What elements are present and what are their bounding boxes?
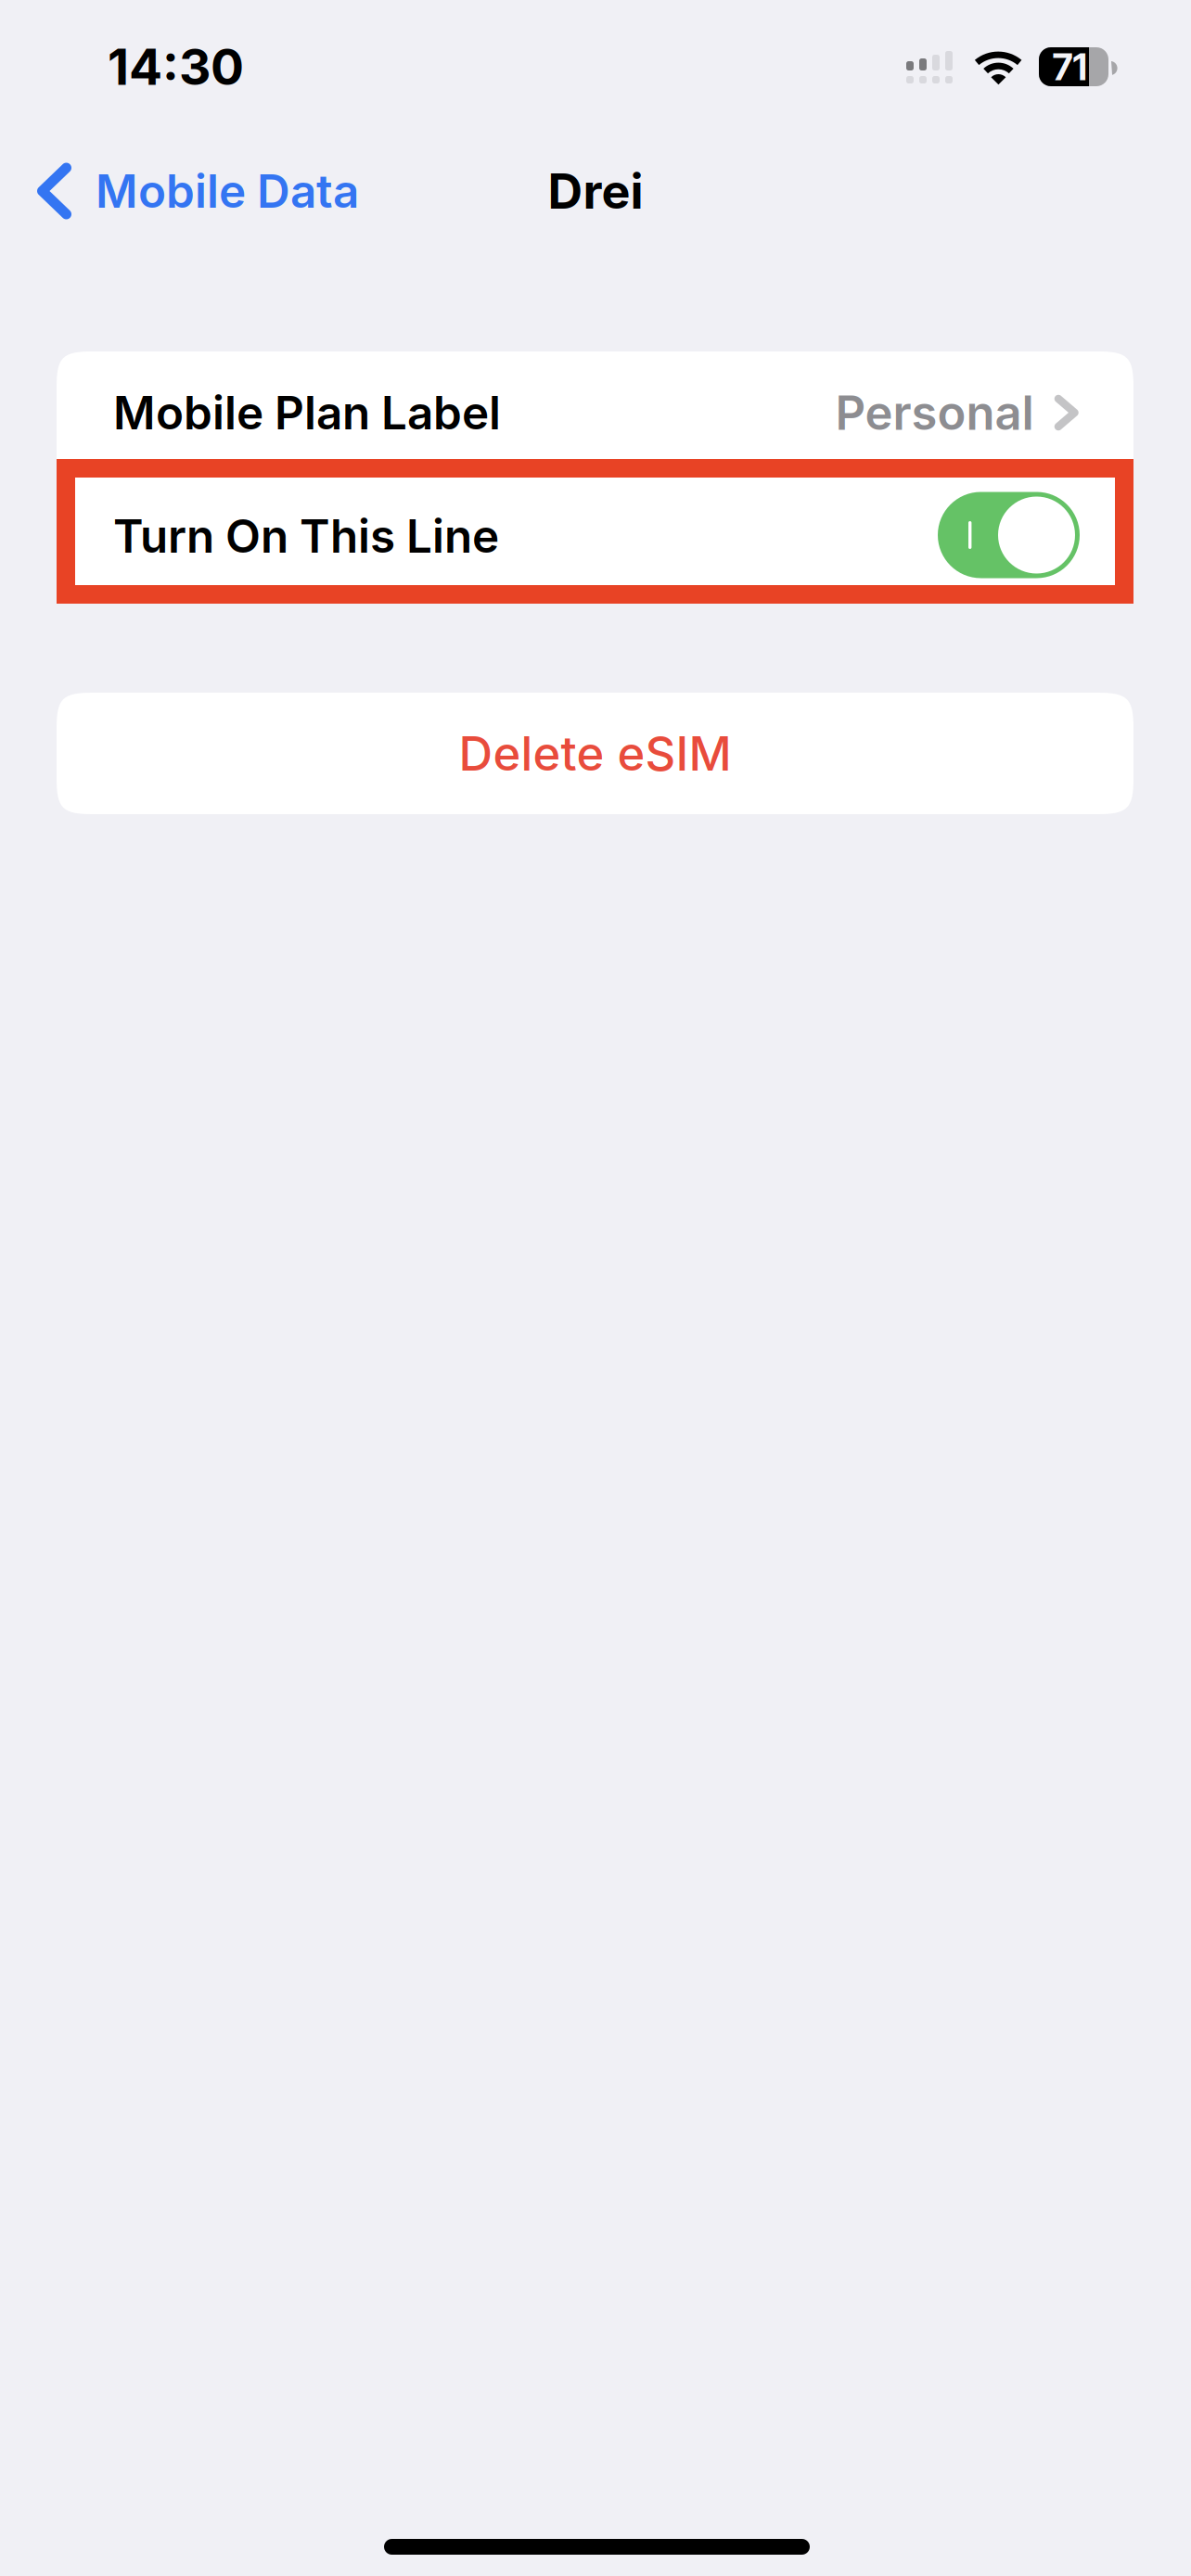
staticText: Mobile Plan Label (113, 385, 501, 440)
staticText: Mobile Data (96, 163, 359, 219)
staticText: Turn On This Line (113, 508, 499, 564)
staticText: Turn On This Line (113, 508, 499, 564)
staticText: 14:30 (108, 37, 244, 97)
staticText: Personal (835, 384, 1034, 441)
button[interactable]: Delete eSIM (57, 693, 1133, 814)
button[interactable]: Mobile Plan Label (57, 351, 1133, 459)
button[interactable]: Turn On This Line (57, 459, 1133, 604)
staticText: 71 (1052, 44, 1088, 89)
staticText: Drei (548, 162, 643, 220)
staticText: Delete eSIM (459, 725, 731, 782)
button[interactable]: Mobile Data (0, 140, 432, 242)
button[interactable]: Turn On This Line (57, 459, 1133, 604)
